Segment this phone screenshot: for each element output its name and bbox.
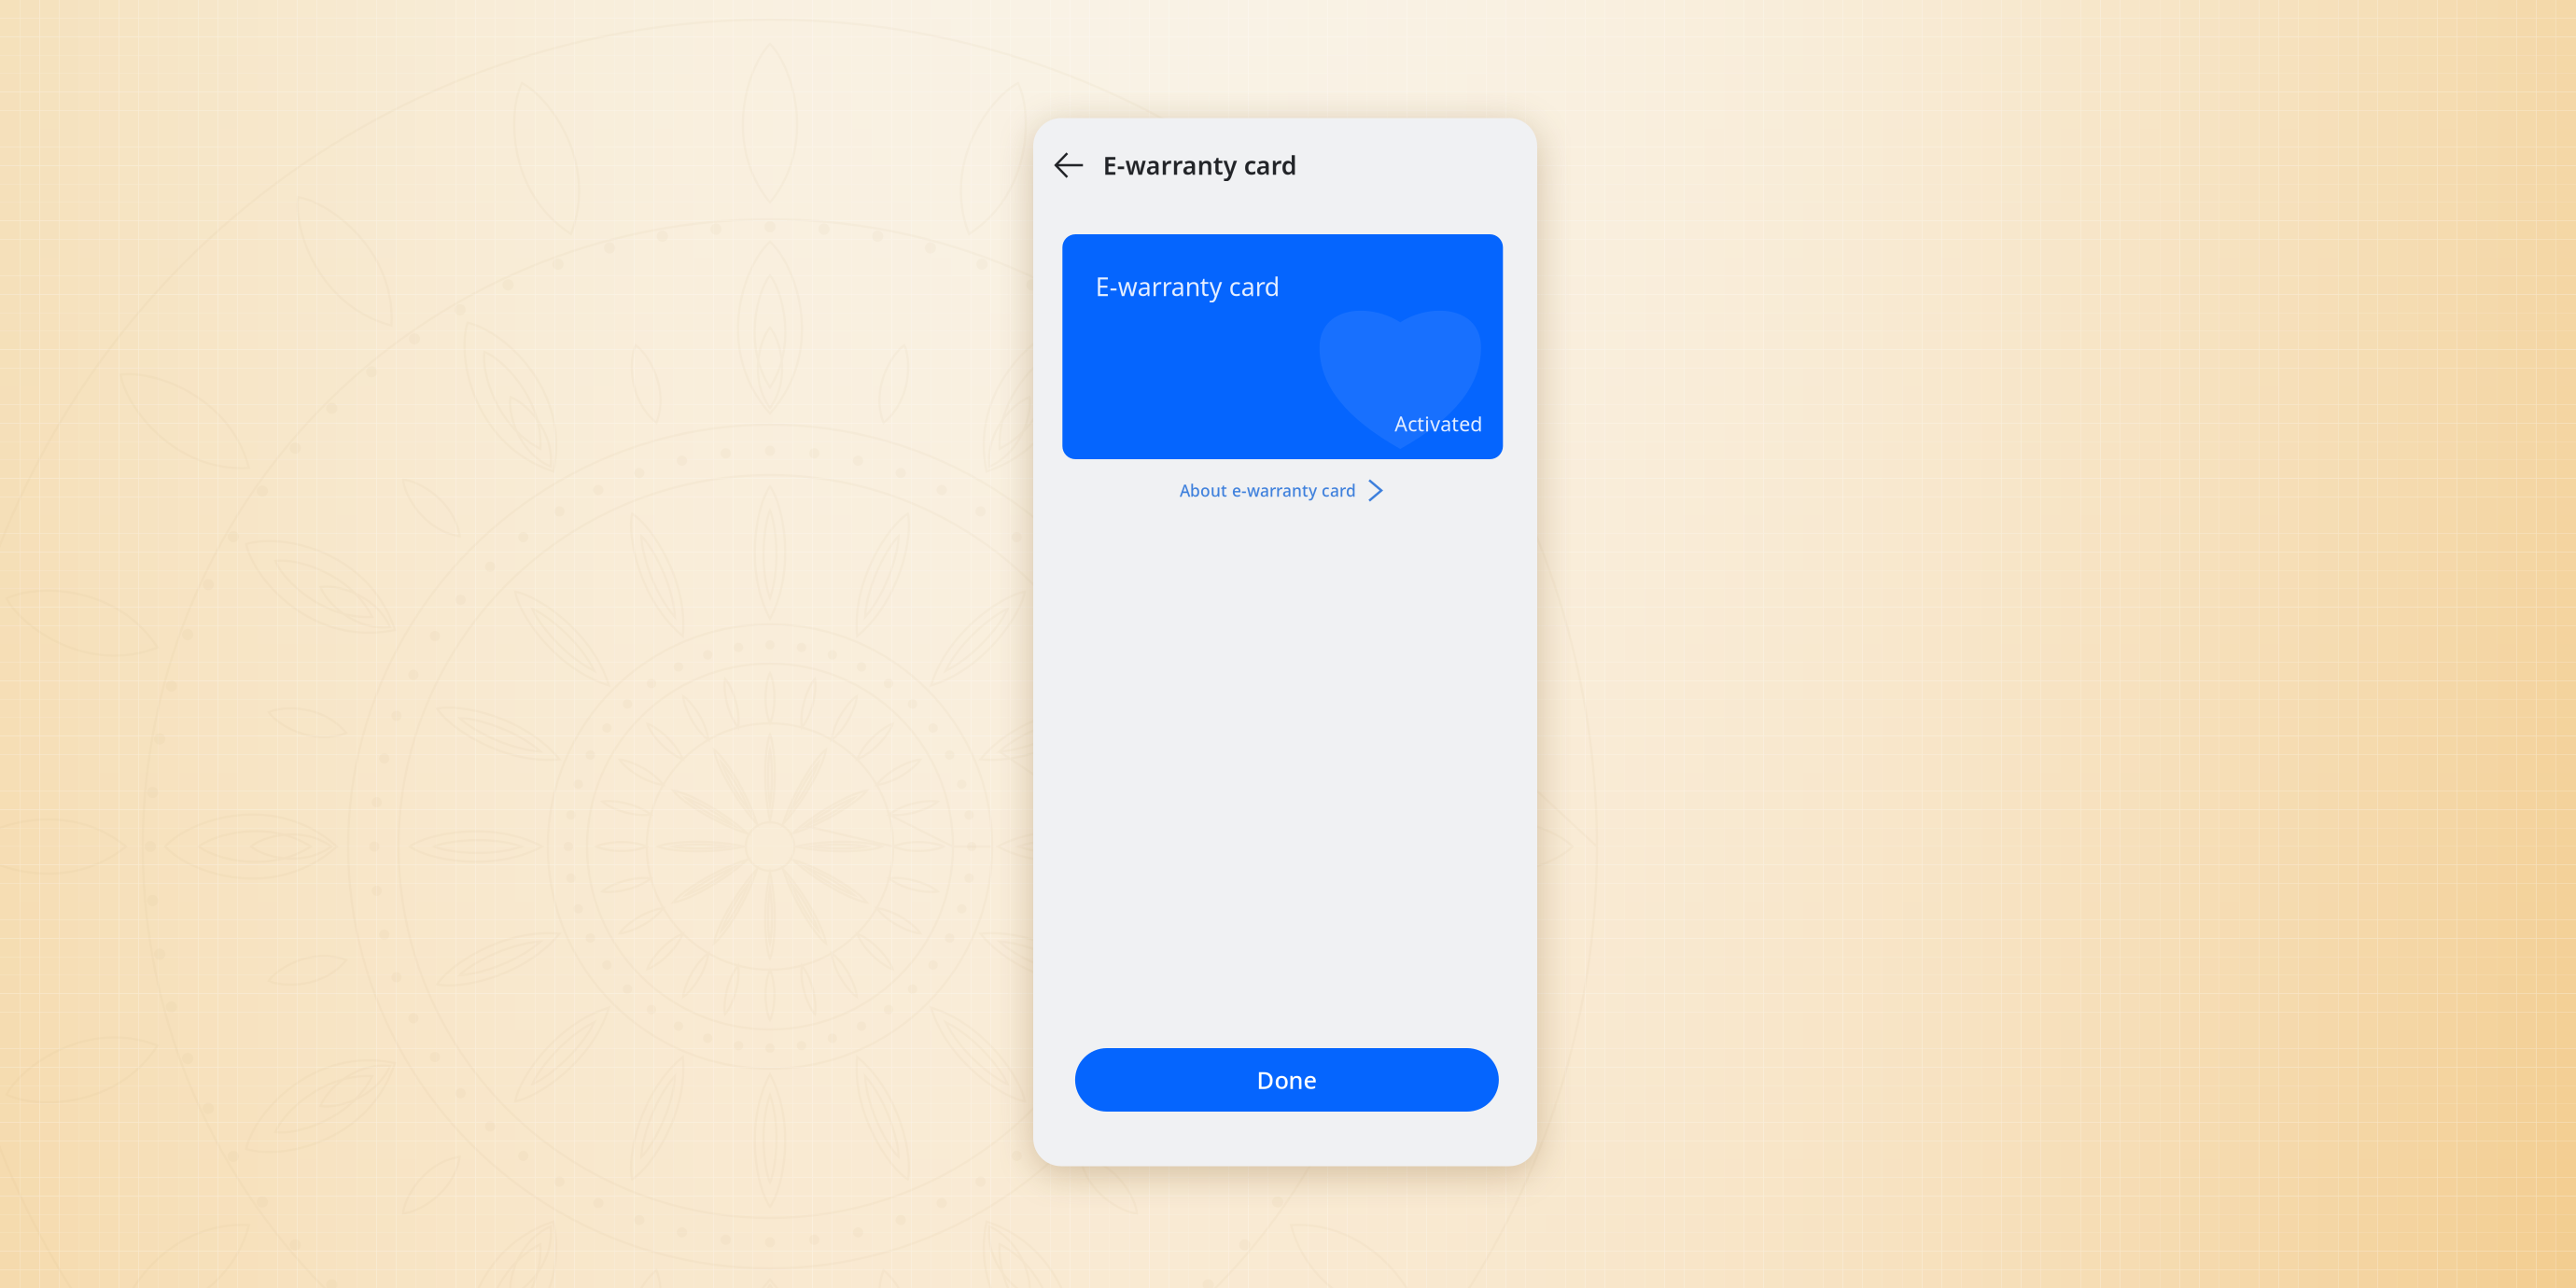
staticText: About e-warranty card: [1180, 480, 1356, 501]
staticText: E-warranty card: [1096, 270, 1279, 303]
staticText: Done: [1257, 1064, 1317, 1096]
button[interactable]: Back: [1039, 134, 1100, 196]
button[interactable]: About e-warranty card: [1169, 468, 1394, 513]
staticText: Activated: [1395, 410, 1482, 437]
staticText: E-warranty card: [1103, 148, 1297, 182]
button[interactable]: Done: [1075, 1048, 1499, 1112]
